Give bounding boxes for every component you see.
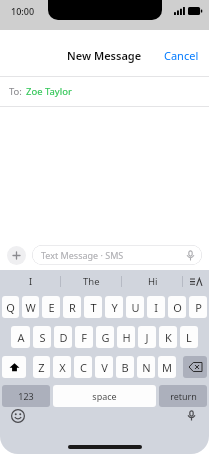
button[interactable]: Emoji — [9, 407, 26, 424]
button[interactable]: Delete — [183, 356, 207, 378]
button[interactable]: return — [159, 385, 207, 407]
staticText: I — [154, 300, 158, 315]
staticText: Y — [111, 300, 118, 315]
staticText: P — [195, 300, 202, 315]
staticText: I — [29, 275, 33, 288]
staticText: E — [48, 300, 55, 315]
staticText: H — [122, 330, 131, 345]
button[interactable]: H — [117, 326, 135, 348]
button[interactable]: E — [42, 296, 60, 318]
button[interactable]: L — [180, 326, 198, 348]
staticText: Q — [6, 300, 15, 315]
staticText: To: — [9, 85, 22, 98]
staticText: Zoe Taylor — [26, 85, 72, 98]
staticText: R — [69, 300, 76, 315]
button[interactable]: Hi — [122, 270, 183, 293]
staticText: U — [131, 300, 140, 315]
button[interactable]: Cancel — [154, 42, 209, 69]
staticText: Hi — [148, 275, 158, 288]
button[interactable]: N — [137, 356, 155, 378]
button[interactable]: K — [159, 326, 177, 348]
staticText: C — [80, 360, 87, 375]
staticText: Text Message · SMS — [41, 249, 124, 261]
button[interactable]: P — [189, 296, 207, 318]
staticText: W — [25, 300, 36, 315]
button[interactable]: Record audio — [184, 249, 196, 261]
staticText: S — [39, 330, 46, 345]
staticText: T — [90, 300, 97, 315]
staticText: V — [101, 360, 108, 375]
button[interactable]: Text Message · SMS — [32, 245, 202, 265]
staticText: G — [101, 330, 110, 345]
staticText: X — [59, 360, 66, 375]
staticText: A — [17, 330, 25, 345]
staticText: D — [59, 330, 68, 345]
staticText: space — [92, 390, 117, 402]
button[interactable]: To: — [0, 77, 209, 106]
button[interactable]: A — [11, 326, 30, 348]
staticText: O — [173, 300, 182, 315]
staticText: N — [142, 360, 151, 375]
button[interactable]: J — [138, 326, 156, 348]
button[interactable]: X — [53, 356, 71, 378]
button[interactable]: R — [63, 296, 81, 318]
button[interactable]: The — [61, 270, 122, 293]
staticText: Cancel — [164, 48, 199, 63]
button[interactable]: space — [53, 385, 156, 407]
button[interactable]: I — [0, 270, 61, 293]
button[interactable]: Shift — [2, 356, 26, 378]
staticText: B — [121, 360, 129, 375]
button[interactable]: O — [168, 296, 186, 318]
staticText: return — [170, 390, 197, 402]
staticText: 123 — [18, 390, 34, 402]
button[interactable]: Dictation — [183, 407, 200, 424]
button[interactable]: W — [22, 296, 39, 318]
staticText: L — [186, 330, 192, 345]
button[interactable]: Text formatting — [183, 270, 209, 293]
button[interactable]: Z — [33, 356, 50, 378]
staticText: M — [162, 360, 172, 375]
button[interactable]: S — [33, 326, 51, 348]
button[interactable]: I — [147, 296, 165, 318]
button[interactable]: 123 — [2, 385, 50, 407]
staticText: K — [165, 330, 172, 345]
button[interactable]: Q — [2, 296, 19, 318]
staticText: New Message — [67, 48, 142, 63]
button[interactable]: B — [116, 356, 134, 378]
button[interactable]: V — [95, 356, 113, 378]
button[interactable]: D — [54, 326, 72, 348]
button[interactable]: M — [158, 356, 176, 378]
staticText: The — [83, 275, 100, 288]
button[interactable]: Add attachment — [7, 246, 26, 265]
button[interactable]: U — [126, 296, 144, 318]
staticText: 10:00 — [11, 5, 35, 17]
button[interactable]: Y — [105, 296, 123, 318]
staticText: F — [81, 330, 87, 345]
staticText: J — [145, 330, 149, 345]
staticText: Z — [38, 360, 45, 375]
button[interactable]: F — [75, 326, 93, 348]
button[interactable]: C — [74, 356, 92, 378]
button[interactable]: G — [96, 326, 114, 348]
button[interactable]: T — [84, 296, 102, 318]
